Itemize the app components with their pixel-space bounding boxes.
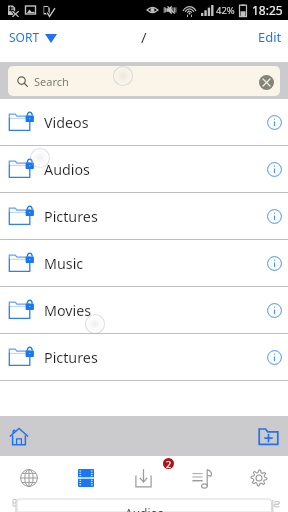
button[interactable]: Browser bbox=[0, 456, 57, 512]
button[interactable]: Info about Movies bbox=[262, 298, 286, 322]
staticText: Pictures bbox=[44, 348, 98, 367]
staticText: Pictures bbox=[44, 207, 98, 226]
button[interactable]: Pictures bbox=[0, 334, 288, 380]
staticText: / bbox=[141, 27, 147, 47]
button[interactable]: Videos bbox=[57, 456, 114, 512]
button[interactable]: Info about Pictures bbox=[262, 204, 286, 228]
button[interactable]: Edit bbox=[249, 21, 288, 53]
staticText: 2 bbox=[166, 458, 172, 469]
staticText: 42% bbox=[216, 4, 235, 17]
button[interactable]: SORT bbox=[0, 23, 66, 51]
staticText: Audios bbox=[44, 160, 90, 179]
button[interactable]: Movies bbox=[0, 287, 288, 333]
button[interactable]: Info about Audios bbox=[262, 157, 286, 181]
button[interactable]: Search bbox=[8, 66, 280, 96]
button[interactable]: Downloads bbox=[114, 456, 172, 512]
button[interactable]: Music bbox=[172, 456, 230, 512]
button[interactable]: Clear search bbox=[259, 75, 274, 90]
staticText: 18:25 bbox=[252, 2, 283, 18]
button[interactable]: Settings bbox=[230, 456, 288, 512]
button[interactable]: Pictures bbox=[0, 193, 288, 239]
button[interactable]: Info about Music bbox=[262, 251, 286, 275]
staticText: Movies bbox=[44, 301, 92, 320]
button[interactable]: Videos bbox=[0, 99, 288, 145]
button[interactable]: Info about Videos bbox=[262, 110, 286, 134]
staticText: Audios bbox=[125, 505, 164, 512]
button[interactable]: Music bbox=[0, 240, 288, 286]
staticText: Edit bbox=[258, 28, 282, 46]
staticText: Music bbox=[44, 254, 84, 273]
button[interactable]: Audios bbox=[0, 146, 288, 192]
staticText: Videos bbox=[44, 113, 89, 132]
staticText: Search bbox=[34, 74, 69, 89]
staticText: SORT bbox=[9, 29, 40, 45]
button[interactable]: New folder bbox=[249, 417, 288, 456]
button[interactable]: Info about Pictures bbox=[262, 345, 286, 369]
button[interactable]: Home bbox=[0, 417, 38, 456]
